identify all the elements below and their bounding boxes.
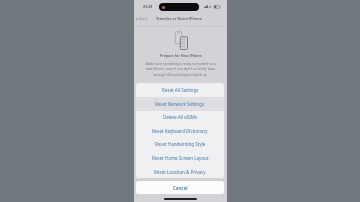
button[interactable]: Cancel xyxy=(136,181,224,194)
button[interactable]: Reset Handwriting Style xyxy=(136,137,224,151)
staticText: Prepare for New iPhone xyxy=(160,53,202,58)
staticText: Reset Handwriting Style xyxy=(155,141,206,147)
button[interactable]: Reset Location & Privacy xyxy=(136,165,224,178)
button[interactable]: Delete All eSIMs xyxy=(136,110,224,124)
staticText: Reset Keyboard Dictionary xyxy=(152,128,208,134)
staticText: Reset Location & Privacy xyxy=(154,169,206,175)
button[interactable]: Reset All Settings xyxy=(136,83,224,97)
staticText: Delete All eSIMs xyxy=(163,114,197,120)
staticText: Make sure everything's ready to transfer… xyxy=(145,61,216,77)
staticText: 23:41 xyxy=(143,4,153,9)
staticText: Reset Network Settings xyxy=(155,101,205,107)
staticText: Transfer or Reset iPhone xyxy=(156,16,202,21)
button[interactable]: Reset Network Settings xyxy=(136,97,224,111)
button[interactable]: Reset Keyboard Dictionary xyxy=(136,124,224,138)
staticText: Back xyxy=(139,16,148,21)
staticText: Reset Home Screen Layout xyxy=(152,155,209,161)
button[interactable]: Reset Home Screen Layout xyxy=(136,151,224,165)
staticText: Cancel xyxy=(173,185,188,191)
staticText: Reset All Settings xyxy=(162,87,199,93)
button[interactable]: Back xyxy=(135,15,149,22)
